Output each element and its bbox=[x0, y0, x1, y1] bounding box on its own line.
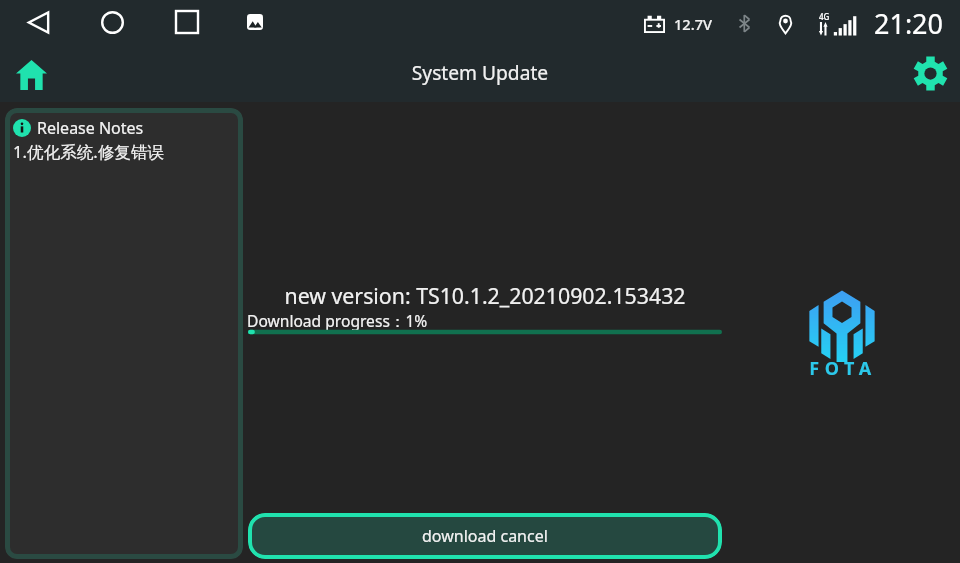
button[interactable]: Settings bbox=[906, 49, 954, 97]
staticText: 4G bbox=[819, 11, 830, 22]
button[interactable]: Recents bbox=[167, 2, 207, 42]
staticText: 21:20 bbox=[874, 5, 944, 42]
staticText: FOTA bbox=[773, 356, 913, 381]
staticText: 12.7V bbox=[674, 14, 712, 34]
staticText: new version: TS10.1.2_20210902.153432 bbox=[248, 281, 722, 310]
button[interactable]: Home bbox=[7, 51, 55, 99]
button[interactable]: Release Notes bbox=[5, 108, 243, 559]
staticText: 1.优化系统.修复错误 bbox=[13, 140, 165, 163]
staticText: Release Notes bbox=[37, 117, 144, 139]
button[interactable]: Screenshot bbox=[235, 2, 275, 42]
button[interactable]: download cancel bbox=[248, 513, 722, 559]
staticText: Download progress：1% bbox=[247, 310, 428, 331]
button[interactable]: Home bbox=[92, 2, 132, 42]
staticText: download cancel bbox=[422, 525, 548, 547]
staticText: System Update bbox=[0, 59, 960, 85]
button[interactable]: Back bbox=[18, 2, 58, 42]
